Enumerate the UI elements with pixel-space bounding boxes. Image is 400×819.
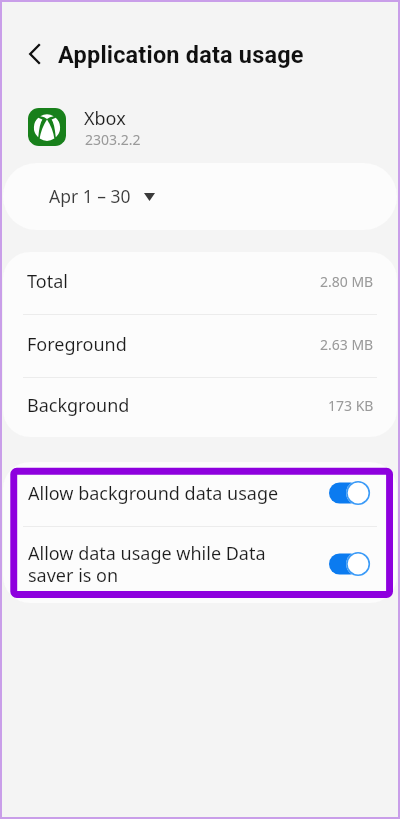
staticText: Total <box>27 269 68 294</box>
staticText: Foreground <box>27 332 127 357</box>
staticText: Allow background data usage <box>28 481 321 506</box>
staticText: 2.63 MB <box>320 335 374 354</box>
button[interactable]: Allow background data usage <box>3 462 397 526</box>
button[interactable]: Back <box>21 40 49 68</box>
button[interactable]: Background <box>3 378 397 437</box>
button[interactable]: Allow data usage while Data saver is on <box>3 527 397 603</box>
button[interactable]: Apr 1 – 30 <box>3 163 397 230</box>
staticText: 2303.2.2 <box>85 130 141 149</box>
staticText: 2.80 MB <box>320 272 374 291</box>
button[interactable]: Toggle on <box>329 551 370 577</box>
button[interactable]: Total <box>3 252 397 314</box>
staticText: Xbox <box>84 106 126 131</box>
staticText: Background <box>27 393 130 418</box>
button[interactable]: Foreground <box>3 315 397 377</box>
staticText: 173 KB <box>328 396 374 415</box>
staticText: Allow data usage while Data saver is on <box>28 541 321 588</box>
staticText: Apr 1 – 30 <box>49 184 131 208</box>
button[interactable]: Toggle on <box>329 480 370 506</box>
staticText: Application data usage <box>58 41 304 69</box>
